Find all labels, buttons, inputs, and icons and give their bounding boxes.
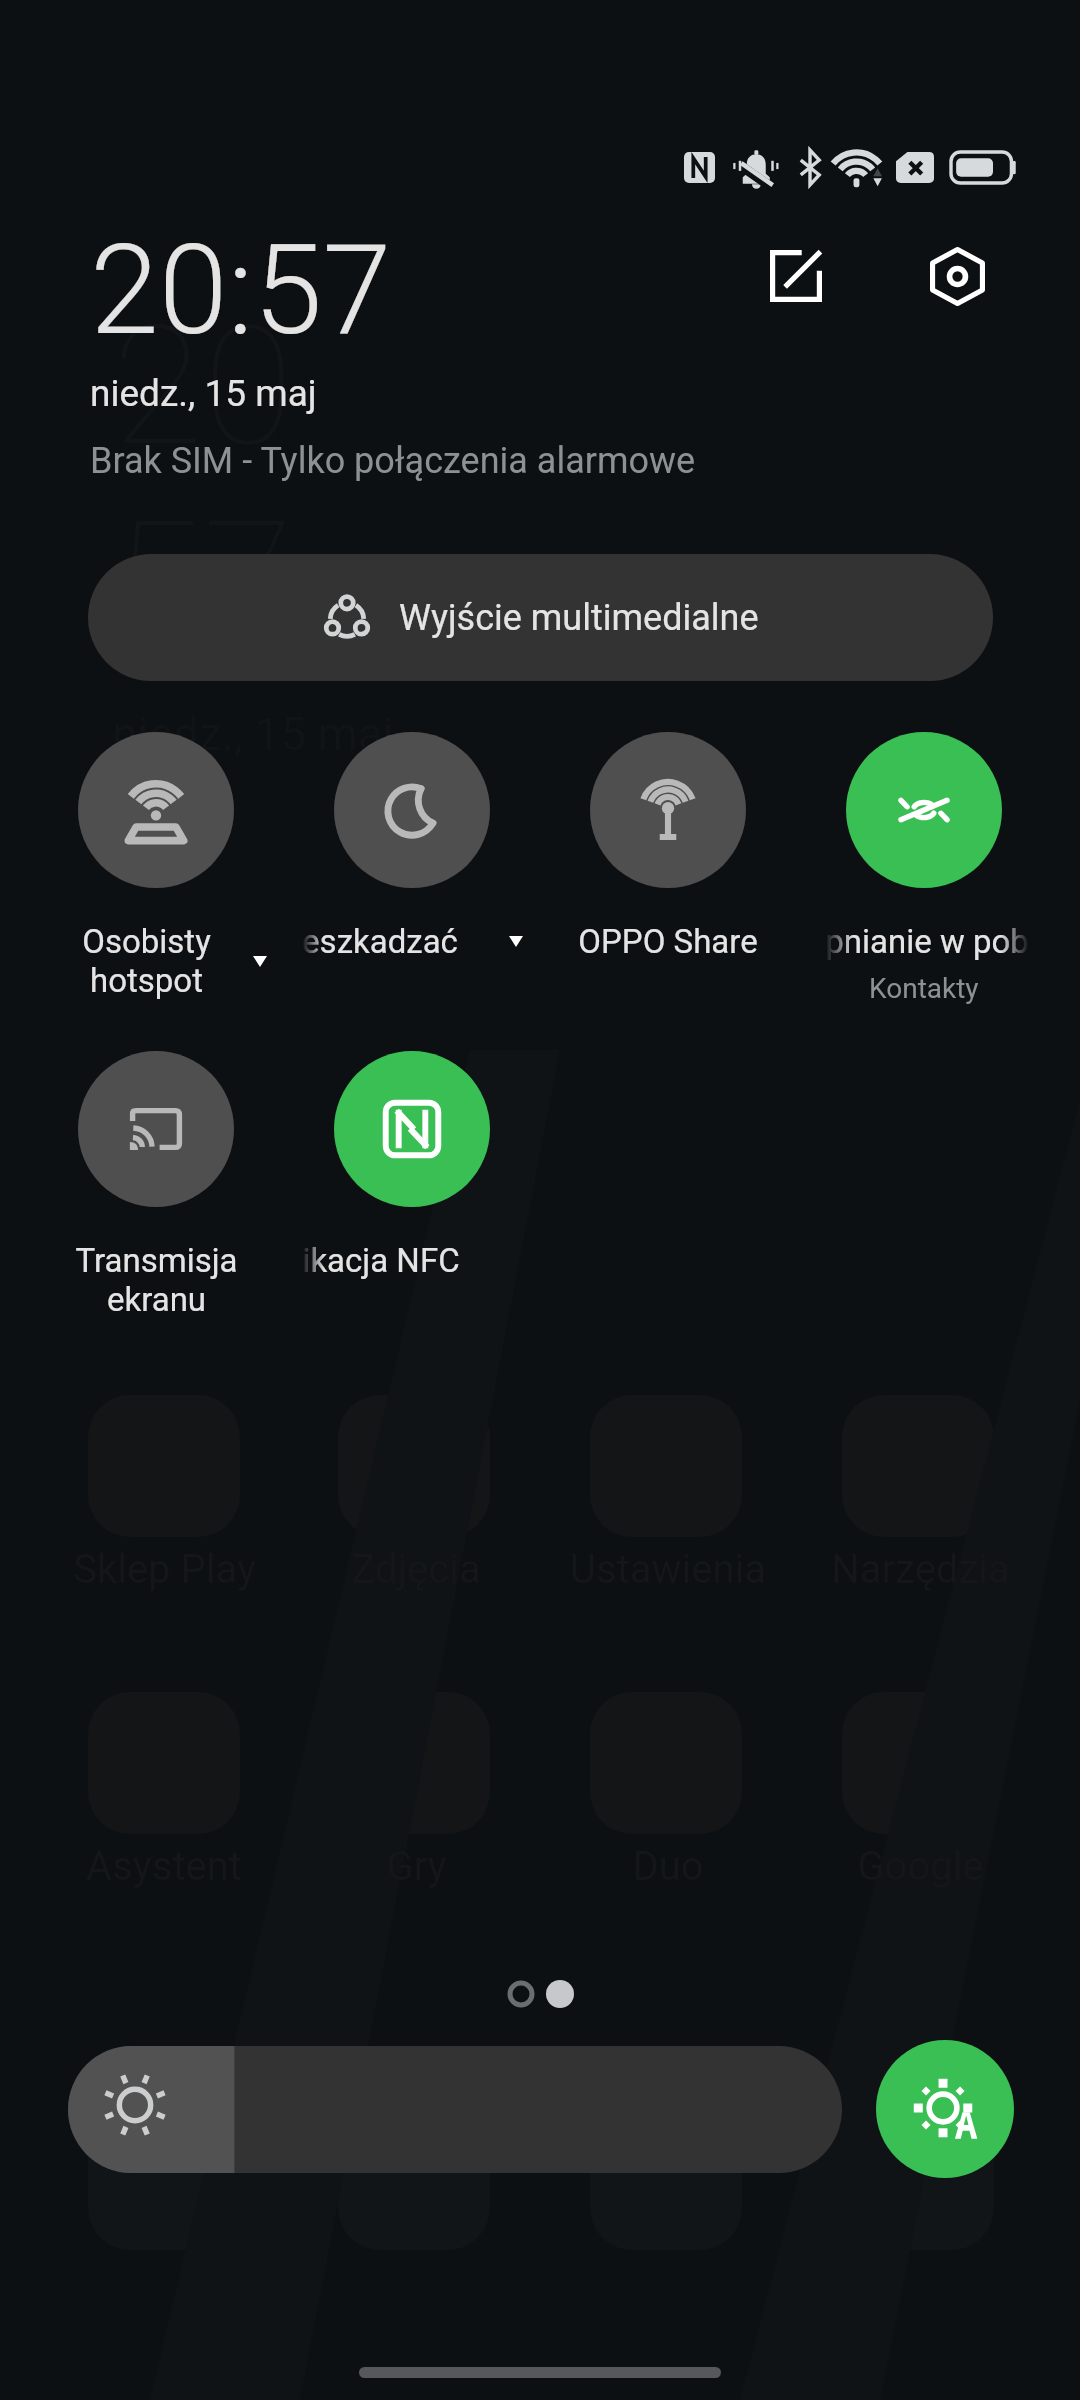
staticText: Transmisja ekranu [75,1241,238,1319]
staticText: niedz., 15 maj [90,372,317,415]
button[interactable]: eszkadzać [284,732,540,961]
staticText: ikacja NFC [302,1241,460,1280]
button[interactable]: Osobisty hotspot [28,732,284,1000]
button[interactable]: Jasność [68,2046,842,2173]
staticText: Kontakty [869,972,979,1005]
button[interactable]: ikacja NFC [284,1051,540,1280]
staticText: Wyjście multimedialne [399,597,759,639]
button[interactable]: pnianie w pob [796,732,1052,1005]
staticText: 20:57 [90,218,392,363]
staticText: 20 [112,289,294,484]
staticText: Osobisty hotspot [82,922,211,1000]
button[interactable]: Jasność automatyczna [876,2040,1014,2178]
staticText: niedz., 15 maj [112,707,394,761]
button[interactable]: Wyjście multimedialne [88,554,993,681]
button[interactable]: OPPO Share [540,732,796,961]
staticText: pnianie w pob [825,922,1029,961]
button[interactable]: Ustawienia [898,217,1016,335]
button[interactable]: Edytuj [738,217,856,335]
staticText: OPPO Share [578,922,758,961]
staticText: Brak SIM - Tylko połączenia alarmowe [90,440,696,482]
button[interactable]: Transmisja ekranu [28,1051,284,1319]
staticText: 57 [112,484,294,679]
staticText: eszkadzać [302,922,458,961]
